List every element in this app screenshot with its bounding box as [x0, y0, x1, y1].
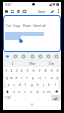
staticText: k	[48, 82, 50, 87]
button[interactable]: q	[4, 74, 9, 81]
staticText: v	[30, 89, 32, 94]
button[interactable]: b	[34, 88, 40, 95]
button[interactable]: ,	[12, 95, 18, 101]
button[interactable]: Select all	[32, 22, 47, 29]
button[interactable]: 8	[42, 67, 48, 74]
staticText: i	[45, 75, 46, 80]
button[interactable]: I	[3, 60, 23, 67]
staticText: Save	[38, 9, 46, 14]
button[interactable]: v	[28, 88, 34, 95]
button[interactable]: j	[40, 81, 46, 88]
staticText: 2	[10, 68, 13, 73]
button[interactable]: o	[48, 74, 54, 81]
staticText: ,	[15, 96, 16, 101]
button[interactable]: y	[30, 74, 36, 81]
button[interactable]: Search	[4, 52, 11, 60]
staticText: .	[48, 96, 49, 101]
button[interactable]: p	[54, 74, 60, 81]
staticText: 1	[5, 68, 8, 73]
button[interactable]: Shift	[4, 88, 11, 95]
staticText: 8	[44, 68, 47, 73]
button[interactable]: The	[23, 60, 42, 67]
button[interactable]: r	[19, 74, 24, 81]
button[interactable]: Backspace	[52, 88, 60, 95]
button[interactable]: n	[40, 88, 46, 95]
button[interactable]: m	[46, 88, 52, 95]
button[interactable]: i	[42, 74, 48, 81]
button[interactable]: 4	[19, 67, 24, 74]
button[interactable]: Paste	[22, 22, 32, 29]
button[interactable]: 2	[9, 67, 14, 74]
staticText: y	[32, 75, 34, 80]
staticText: 6	[32, 68, 35, 73]
button[interactable]: GIF	[20, 52, 27, 60]
button[interactable]: 6	[30, 67, 36, 74]
button[interactable]: Cut	[5, 22, 12, 29]
button[interactable]: c	[22, 88, 28, 95]
button[interactable]: Save	[37, 7, 47, 15]
button[interactable]: Edit	[49, 7, 56, 15]
staticText: 9	[50, 68, 53, 73]
staticText: w	[10, 75, 13, 80]
staticText: l	[55, 82, 56, 87]
staticText: I	[12, 61, 14, 66]
staticText: d	[18, 82, 21, 87]
button[interactable]: 7	[36, 67, 42, 74]
button[interactable]: Settings	[53, 52, 60, 60]
staticText: 9:41	[5, 3, 12, 7]
button[interactable]: Emoji	[29, 52, 36, 60]
staticText: o	[50, 75, 53, 80]
button[interactable]: Enter	[51, 95, 60, 101]
button[interactable]: Insert image	[21, 7, 27, 15]
staticText: f	[24, 82, 26, 87]
staticText: 5	[26, 68, 29, 73]
staticText: h	[36, 82, 39, 87]
staticText: Select all	[33, 24, 46, 28]
staticText: p	[56, 75, 59, 80]
button[interactable]: Clipboard	[37, 52, 44, 60]
staticText: ?123	[5, 96, 11, 100]
staticText: e	[15, 75, 18, 80]
button[interactable]: Undo	[3, 7, 9, 15]
button[interactable]: w	[9, 74, 14, 81]
button[interactable]: x	[16, 88, 22, 95]
button[interactable]: h	[34, 81, 40, 88]
button[interactable]: u	[36, 74, 42, 81]
button[interactable]: Text format	[15, 7, 21, 15]
staticText: j	[43, 82, 44, 87]
button[interactable]: l	[52, 81, 58, 88]
button[interactable]: .	[45, 95, 51, 101]
button[interactable]: k	[46, 81, 52, 88]
button[interactable]: t	[24, 74, 30, 81]
button[interactable]: 1	[4, 67, 9, 74]
staticText: m	[47, 89, 51, 94]
button[interactable]: Redo	[9, 7, 15, 15]
button[interactable]: s	[11, 81, 16, 88]
button[interactable]: e	[14, 74, 19, 81]
staticText: x	[18, 89, 20, 94]
staticText: I'm	[49, 61, 55, 66]
button[interactable]: z	[11, 88, 16, 95]
button[interactable]: I'm	[42, 60, 61, 67]
button[interactable]: a	[6, 81, 11, 88]
staticText: t	[26, 75, 28, 80]
staticText: Cut	[6, 24, 11, 28]
button[interactable]: More options	[56, 7, 61, 15]
button[interactable]: d	[16, 81, 22, 88]
staticText: g	[30, 82, 33, 87]
button[interactable]: 5	[24, 67, 30, 74]
button[interactable]: Stickers	[12, 52, 19, 60]
button[interactable]: 3	[14, 67, 19, 74]
staticText: 4	[20, 68, 23, 73]
button[interactable]: f	[22, 81, 28, 88]
staticText: 3	[15, 68, 18, 73]
button[interactable]: Copy	[12, 22, 22, 29]
button[interactable]: Translate	[45, 52, 52, 60]
button[interactable]: 9	[48, 67, 54, 74]
staticText: u	[38, 75, 41, 80]
staticText: b	[36, 89, 39, 94]
button[interactable]: g	[28, 81, 34, 88]
button[interactable]: 0	[54, 67, 60, 74]
button[interactable]: ?123	[4, 95, 12, 101]
